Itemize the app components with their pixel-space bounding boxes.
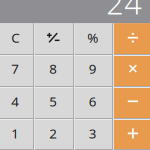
button[interactable]: Toggle sign [34,23,73,55]
button[interactable]: Divide [113,23,150,55]
staticText: 3 [89,124,97,142]
button[interactable]: 2 [34,118,73,150]
staticText: 1 [11,124,19,142]
button[interactable]: 3 [73,118,113,150]
button[interactable]: 4 [0,86,34,118]
button[interactable]: 7 [0,55,34,86]
staticText: 4 [11,92,19,110]
staticText: 24 [106,0,142,23]
button[interactable]: Subtract [113,86,150,118]
staticText: 8 [49,60,57,77]
staticText: 6 [89,92,97,110]
button[interactable]: 6 [73,86,113,118]
staticText: 7 [11,60,19,77]
staticText: C [11,29,19,46]
button[interactable]: 5 [34,86,73,118]
button[interactable]: Add [113,118,150,150]
button[interactable]: 1 [0,118,34,150]
button[interactable]: 8 [34,55,73,86]
button[interactable]: Multiply [113,55,150,86]
staticText: % [87,29,98,46]
staticText: 5 [49,92,57,110]
button[interactable]: % [73,23,113,55]
staticText: 9 [89,60,97,77]
staticText: 2 [49,124,57,142]
button[interactable]: 9 [73,55,113,86]
button[interactable]: C [0,23,34,55]
